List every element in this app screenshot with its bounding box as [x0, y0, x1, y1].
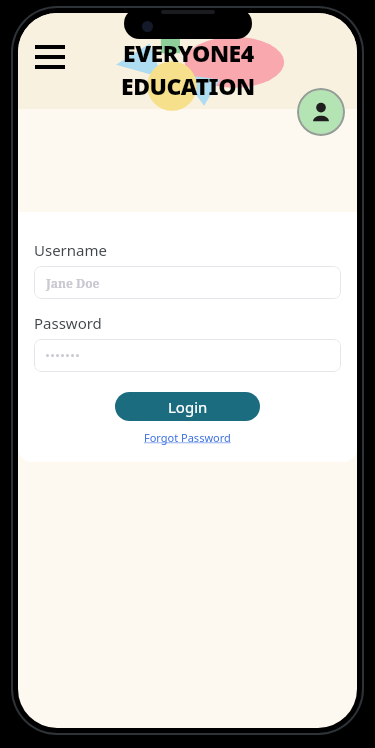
staticText: EDUCATION [121, 70, 255, 101]
button[interactable]: Profile [297, 88, 345, 136]
staticText: Password [34, 313, 102, 333]
staticText: Username [34, 240, 107, 260]
staticText: Login [168, 397, 208, 417]
staticText: EVERYONE4 [123, 37, 254, 68]
button[interactable]: Menu [29, 39, 71, 75]
button[interactable]: Login [115, 392, 260, 421]
button[interactable] [34, 339, 341, 372]
staticText: Forgot Password [144, 430, 231, 445]
staticText: Jane Doe [46, 275, 100, 291]
button[interactable]: Forgot Password [142, 428, 233, 447]
button[interactable]: Jane Doe [34, 266, 341, 299]
